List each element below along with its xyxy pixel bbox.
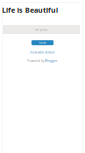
staticText: View web version	[30, 51, 55, 54]
button[interactable]: Home	[31, 40, 53, 45]
staticText: Blogger.	[45, 59, 58, 63]
staticText: Home	[38, 41, 46, 44]
button[interactable]: View web version	[2, 50, 82, 55]
staticText: Life is Beautiful	[2, 5, 58, 15]
staticText: Powered by	[27, 59, 45, 63]
staticText: No posts.	[35, 28, 48, 31]
